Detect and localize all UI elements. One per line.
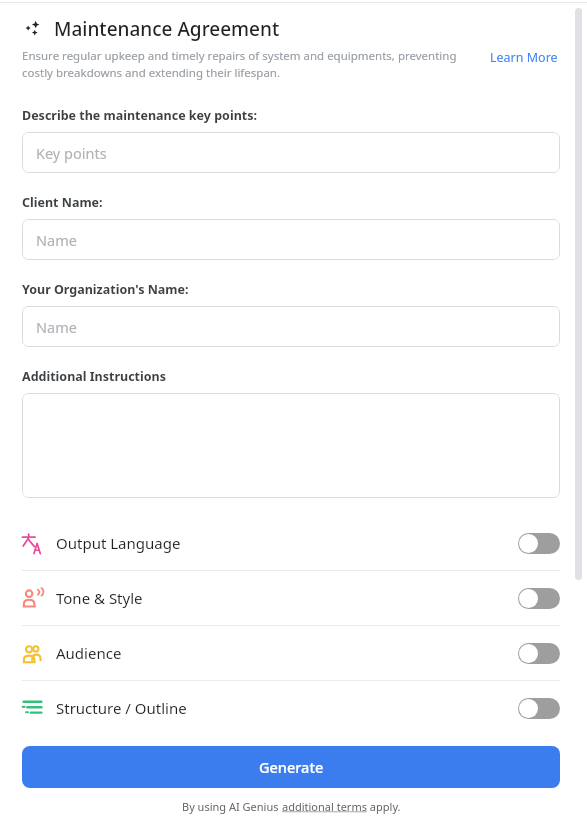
button[interactable]: additional terms (282, 799, 367, 814)
button[interactable]: Toggle (518, 588, 560, 609)
button[interactable]: Toggle (518, 643, 560, 664)
button[interactable]: Toggle (518, 698, 560, 719)
staticText: Learn More (490, 49, 558, 66)
staticText: Maintenance Agreement (54, 16, 280, 42)
staticText: Your Organization's Name: (22, 281, 189, 298)
staticText: Output Language (56, 533, 518, 553)
button[interactable] (22, 393, 560, 498)
button[interactable]: Learn More (488, 48, 560, 67)
staticText: Tone & Style (56, 588, 518, 608)
staticText: Generate (259, 757, 324, 777)
staticText: Structure / Outline (56, 698, 518, 718)
button[interactable]: Key points (22, 132, 560, 173)
staticText: Name (36, 230, 77, 250)
staticText: By using AI Genius (182, 799, 282, 814)
button[interactable]: Output Language (22, 516, 560, 570)
button[interactable]: Generate (22, 746, 560, 788)
button[interactable]: Structure / Outline (22, 681, 560, 735)
staticText: Audience (56, 643, 518, 663)
button[interactable]: Name (22, 306, 560, 347)
button[interactable]: Tone & Style (22, 571, 560, 625)
staticText: Additional Instructions (22, 368, 166, 385)
staticText: Describe the maintenance key points: (22, 107, 258, 124)
staticText: apply. (367, 799, 401, 814)
staticText: Client Name: (22, 194, 103, 211)
button[interactable]: Toggle (518, 533, 560, 554)
staticText: Key points (36, 143, 107, 163)
staticText: Name (36, 317, 77, 337)
staticText: Ensure regular upkeep and timely repairs… (22, 48, 476, 81)
button[interactable]: Name (22, 219, 560, 260)
staticText: additional terms (282, 799, 367, 814)
button[interactable]: Audience (22, 626, 560, 680)
